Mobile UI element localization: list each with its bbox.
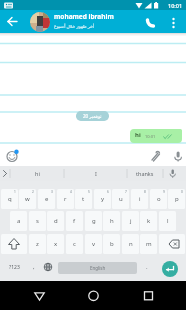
staticText: نوفمبر 20	[83, 113, 102, 119]
button[interactable]	[148, 149, 162, 163]
staticText: k	[147, 217, 151, 225]
button[interactable]: h	[103, 211, 120, 231]
staticText: j	[130, 217, 132, 225]
staticText: أخر ظهور خلال أسبوع	[54, 23, 95, 29]
staticText: h	[110, 217, 114, 225]
button[interactable]: hi	[10, 166, 64, 181]
button[interactable]: x	[47, 234, 64, 254]
staticText: d	[54, 217, 58, 225]
staticText: 2	[32, 190, 34, 194]
button[interactable]: l	[159, 211, 176, 231]
staticText: e	[45, 195, 49, 203]
button[interactable]	[162, 261, 178, 277]
staticText: w	[25, 195, 30, 203]
staticText: f	[73, 217, 76, 225]
staticText: 4	[70, 190, 72, 194]
staticText: 1	[14, 190, 16, 194]
button[interactable]	[159, 234, 185, 254]
button[interactable]	[171, 149, 185, 163]
button[interactable]: a	[10, 211, 27, 231]
staticText: i	[139, 195, 141, 203]
button[interactable]: f	[66, 211, 83, 231]
button[interactable]: s	[29, 211, 46, 231]
button[interactable]: g	[85, 211, 102, 231]
staticText: ,	[33, 263, 35, 271]
staticText: t	[82, 195, 85, 203]
button[interactable]: c	[66, 234, 83, 254]
button[interactable]: q	[1, 189, 18, 209]
staticText: hi	[35, 170, 40, 177]
staticText: a	[17, 217, 21, 225]
staticText: English	[90, 265, 106, 271]
button[interactable]: y	[94, 189, 111, 209]
staticText: ?123	[9, 264, 20, 271]
staticText: 7	[125, 190, 127, 194]
staticText: y	[101, 195, 105, 203]
staticText: mohamed ibrahim	[54, 12, 114, 21]
button[interactable]: w	[19, 189, 36, 209]
staticText: x	[54, 240, 58, 248]
button[interactable]	[5, 14, 21, 30]
button[interactable]: p	[168, 189, 185, 209]
staticText: u	[119, 195, 123, 203]
staticText: I	[95, 170, 97, 177]
staticText: c	[73, 240, 76, 248]
staticText: 0	[181, 190, 183, 194]
button[interactable]: ,	[27, 257, 41, 277]
button[interactable]: ?123	[1, 257, 27, 277]
button[interactable]: v	[85, 234, 102, 254]
staticText: b	[110, 240, 114, 248]
staticText: l	[167, 217, 169, 225]
staticText: 3	[51, 190, 53, 194]
button[interactable]: b	[103, 234, 120, 254]
button[interactable]: d	[47, 211, 64, 231]
staticText: s	[36, 217, 39, 225]
staticText: 8	[144, 190, 146, 194]
button[interactable]: hi	[130, 129, 182, 143]
button[interactable]: z	[29, 234, 46, 254]
button[interactable]: k	[140, 211, 157, 231]
button[interactable]: t	[75, 189, 92, 209]
staticText: v	[92, 240, 96, 248]
button[interactable]	[5, 149, 19, 163]
staticText: 9	[163, 190, 165, 194]
staticText: q	[8, 195, 12, 203]
staticText: .	[146, 263, 148, 271]
staticText: r	[64, 195, 67, 203]
button[interactable]	[140, 287, 157, 304]
button[interactable]	[30, 12, 50, 32]
staticText: z	[36, 240, 39, 248]
staticText: 6	[107, 190, 109, 194]
staticText: 10:01	[168, 2, 183, 9]
button[interactable]	[1, 234, 27, 254]
staticText: n	[129, 240, 133, 248]
staticText: hi	[135, 131, 141, 139]
staticText: o	[157, 195, 161, 203]
button[interactable]: r	[57, 189, 74, 209]
staticText: 10:01	[145, 134, 156, 139]
staticText: thanks	[136, 170, 154, 177]
staticText: 5	[88, 190, 90, 194]
button[interactable]: m	[140, 234, 157, 254]
button[interactable]: j	[122, 211, 139, 231]
button[interactable]	[85, 287, 102, 304]
button[interactable]	[142, 24, 158, 40]
button[interactable]: English	[58, 262, 137, 274]
button[interactable]	[31, 287, 48, 304]
button[interactable]	[41, 257, 55, 277]
staticText: m	[146, 240, 152, 248]
button[interactable]: o	[150, 189, 167, 209]
button[interactable]: I	[64, 166, 127, 181]
staticText: p	[175, 195, 179, 203]
button[interactable]: n	[122, 234, 139, 254]
button[interactable]: e	[38, 189, 55, 209]
button[interactable]: thanks	[127, 166, 163, 181]
button[interactable]: i	[131, 189, 148, 209]
staticText: g	[92, 217, 96, 225]
button[interactable]: u	[112, 189, 129, 209]
